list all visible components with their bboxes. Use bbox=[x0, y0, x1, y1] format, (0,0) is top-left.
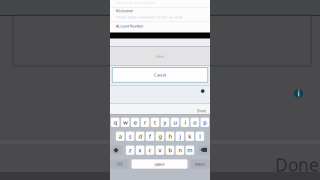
button[interactable]: h bbox=[166, 132, 174, 141]
staticText: b bbox=[168, 146, 171, 154]
button[interactable]: e bbox=[131, 118, 139, 127]
button[interactable]: 123 bbox=[110, 159, 128, 169]
staticText: Please enter a nickname for this account bbox=[116, 15, 182, 19]
staticText: Done bbox=[197, 108, 206, 113]
staticText: o bbox=[193, 118, 196, 126]
staticText: m bbox=[187, 146, 192, 154]
button[interactable]: n bbox=[176, 145, 184, 155]
button[interactable]: m bbox=[186, 145, 194, 155]
button[interactable]: Done bbox=[275, 153, 319, 177]
button[interactable]: c bbox=[146, 145, 154, 155]
staticText: h bbox=[168, 132, 171, 140]
button[interactable]: s bbox=[126, 132, 134, 141]
button[interactable]: space bbox=[131, 159, 187, 169]
button[interactable]: Cancel bbox=[112, 67, 208, 82]
staticText: i bbox=[297, 88, 299, 99]
button[interactable]: Help bbox=[201, 89, 204, 93]
staticText: v bbox=[158, 146, 161, 154]
staticText: Account Number bbox=[116, 24, 143, 28]
button[interactable]: Done bbox=[197, 108, 206, 113]
button[interactable]: l bbox=[195, 132, 204, 141]
button[interactable]: Shift bbox=[110, 145, 122, 155]
button[interactable]: r bbox=[141, 118, 149, 127]
staticText: 123 bbox=[116, 161, 122, 167]
staticText: j bbox=[179, 132, 180, 140]
staticText: e bbox=[134, 118, 137, 126]
button[interactable]: a bbox=[116, 132, 124, 141]
button[interactable]: o bbox=[190, 118, 199, 127]
staticText: n bbox=[178, 146, 181, 154]
staticText: f bbox=[149, 132, 151, 140]
button[interactable]: f bbox=[146, 132, 154, 141]
button[interactable]: w bbox=[121, 118, 129, 127]
staticText: l bbox=[199, 132, 200, 140]
staticText: i bbox=[184, 118, 185, 126]
button[interactable]: q bbox=[111, 118, 119, 127]
staticText: c bbox=[149, 146, 152, 154]
staticText: Nickname bbox=[116, 8, 133, 13]
staticText: q bbox=[114, 118, 117, 126]
button[interactable]: p bbox=[200, 118, 209, 127]
staticText: t bbox=[154, 118, 156, 126]
button[interactable]: Delete bbox=[198, 145, 209, 155]
button[interactable]: u bbox=[171, 118, 179, 127]
staticText: return bbox=[195, 161, 205, 167]
staticText: u bbox=[173, 118, 176, 126]
staticText: Save bbox=[156, 53, 164, 59]
staticText: s bbox=[129, 132, 132, 140]
staticText: k bbox=[188, 132, 191, 140]
button[interactable]: i bbox=[181, 118, 189, 127]
button[interactable]: v bbox=[156, 145, 164, 155]
staticText: d bbox=[139, 132, 142, 140]
staticText: z bbox=[129, 146, 132, 154]
staticText: x bbox=[139, 146, 142, 154]
staticText: r bbox=[144, 118, 146, 126]
button[interactable]: return bbox=[190, 159, 209, 169]
staticText: w bbox=[123, 118, 127, 126]
button[interactable]: g bbox=[156, 132, 164, 141]
button[interactable]: Save bbox=[110, 46, 210, 66]
button[interactable]: y bbox=[161, 118, 169, 127]
staticText: g bbox=[158, 132, 161, 140]
staticText: y bbox=[163, 118, 166, 126]
button[interactable]: d bbox=[136, 132, 144, 141]
button[interactable]: j bbox=[176, 132, 184, 141]
staticText: a bbox=[119, 132, 122, 140]
button[interactable]: x bbox=[136, 145, 144, 155]
button[interactable]: b bbox=[166, 145, 174, 155]
staticText: p bbox=[203, 118, 206, 126]
button[interactable]: z bbox=[126, 145, 134, 155]
staticText: Cancel bbox=[154, 72, 166, 78]
staticText: space bbox=[154, 161, 164, 167]
button[interactable]: k bbox=[186, 132, 194, 141]
staticText: Choose an account type bbox=[116, 0, 155, 5]
button[interactable]: t bbox=[151, 118, 159, 127]
button[interactable]: Info bbox=[294, 89, 303, 98]
staticText: Done bbox=[275, 153, 319, 177]
